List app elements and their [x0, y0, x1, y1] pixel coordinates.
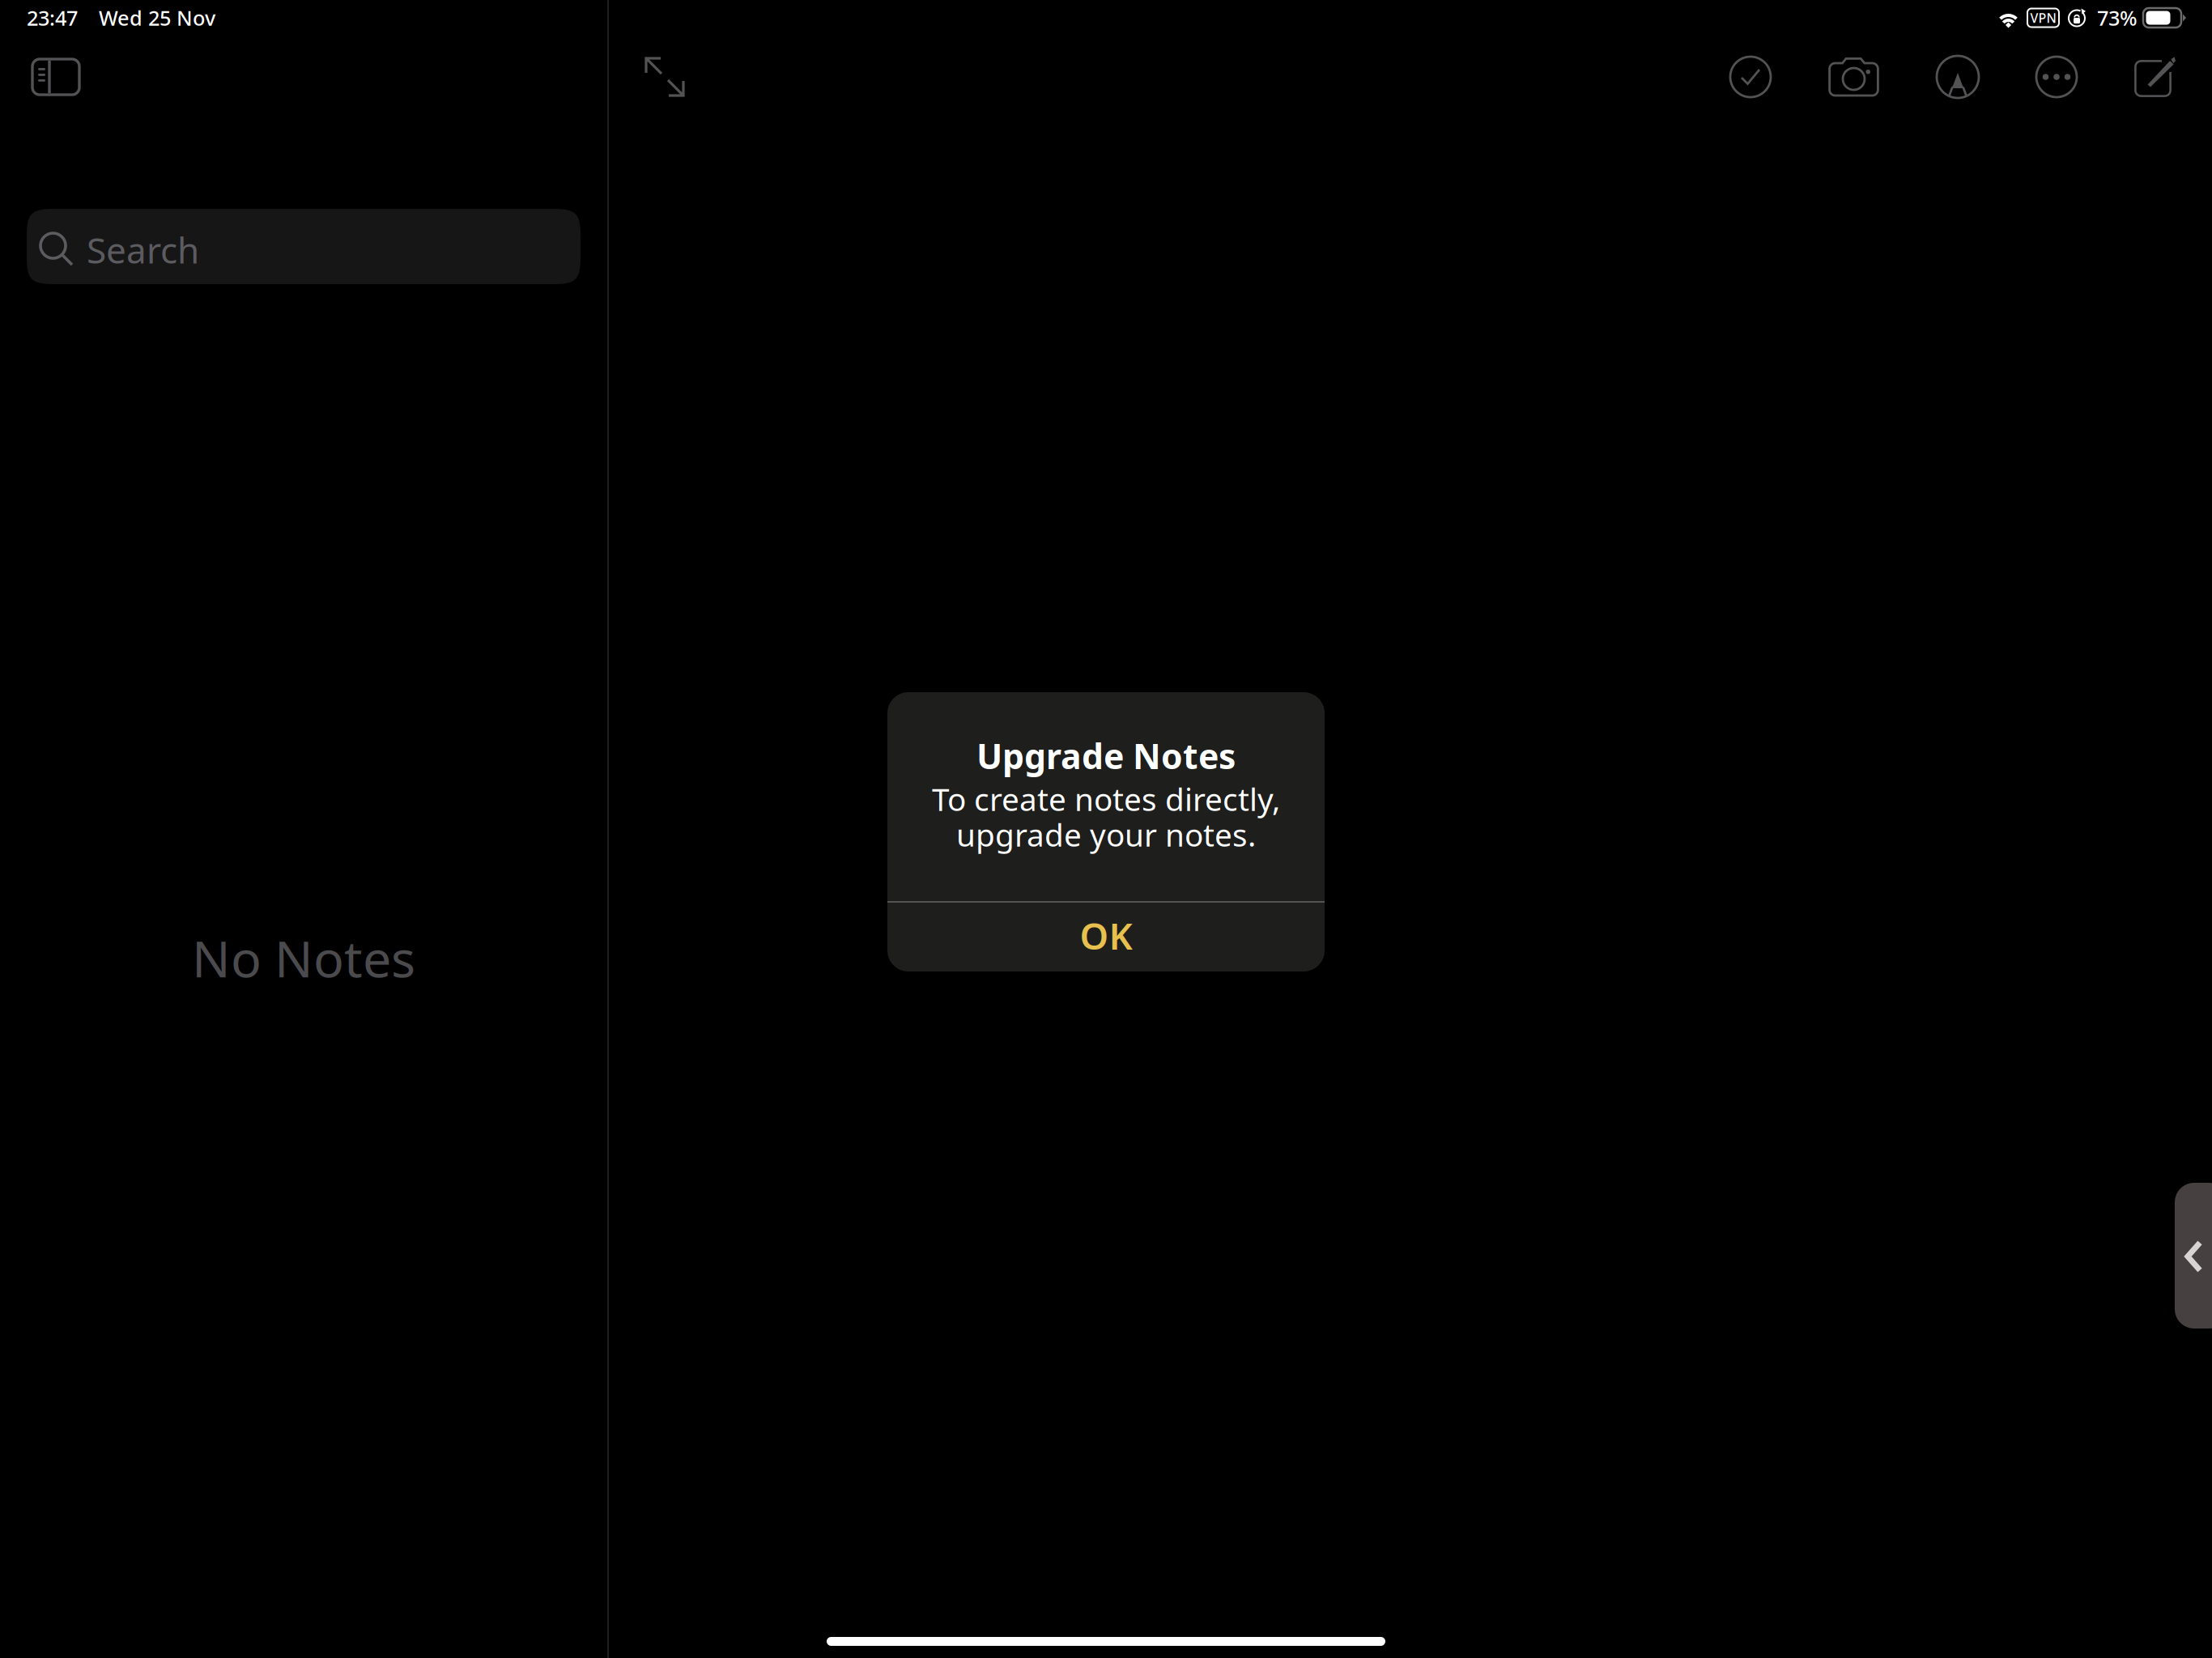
- button[interactable]: Expand: [620, 44, 698, 110]
- staticText: Search: [87, 226, 199, 273]
- staticText: VPN: [2030, 9, 2056, 26]
- staticText: No Notes: [192, 924, 415, 991]
- staticText: upgrade your notes.: [956, 814, 1256, 855]
- button[interactable]: New Note: [2123, 45, 2188, 108]
- staticText: Upgrade Notes: [976, 733, 1236, 779]
- staticText: Wed 25 Nov: [99, 4, 215, 31]
- button[interactable]: More: [2025, 45, 2088, 108]
- staticText: 23:47: [27, 4, 78, 31]
- staticText: 73%: [2097, 4, 2138, 31]
- button[interactable]: Search: [0, 209, 581, 284]
- staticText: To create notes directly,: [932, 778, 1280, 820]
- button[interactable]: Show Sidebar: [0, 42, 97, 112]
- button[interactable]: Checklist: [1719, 45, 1782, 108]
- staticText: OK: [1080, 911, 1132, 960]
- button[interactable]: Show Slide Over: [2175, 1183, 2212, 1329]
- button[interactable]: OK: [887, 899, 1325, 968]
- button[interactable]: Camera: [1817, 46, 1891, 108]
- button[interactable]: Markup: [1925, 45, 1990, 109]
